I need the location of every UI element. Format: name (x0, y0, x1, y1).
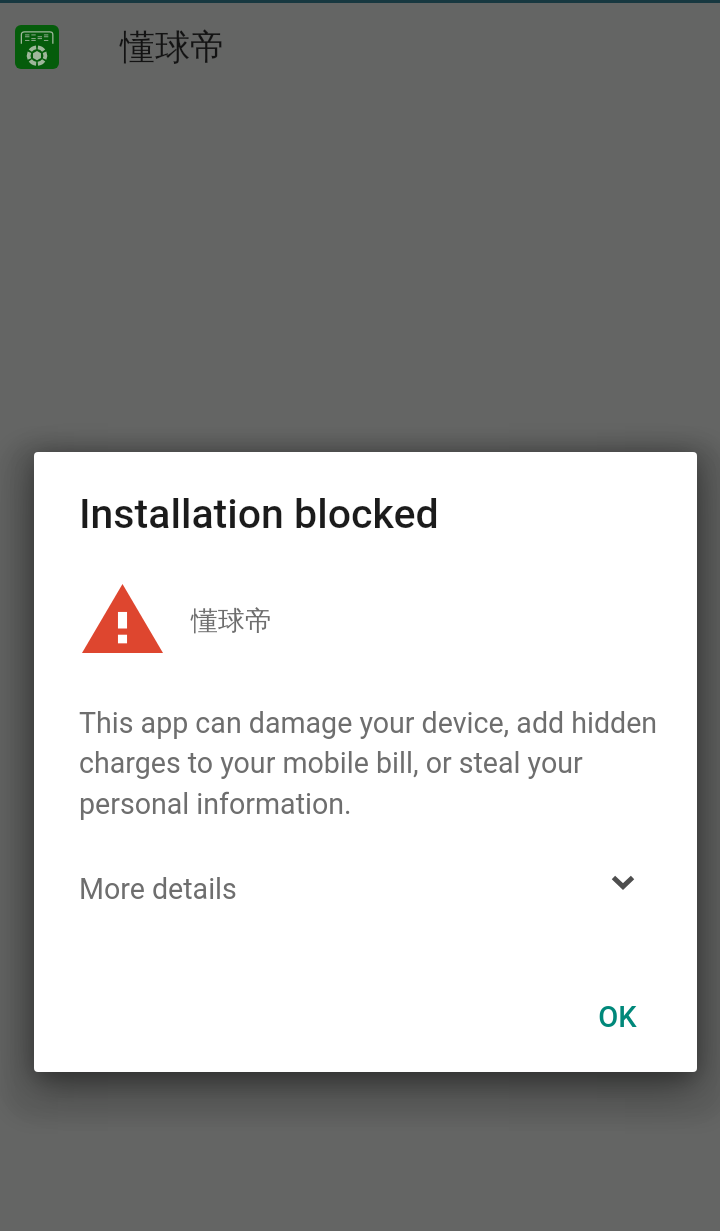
button[interactable]: App icon (15, 25, 59, 69)
staticText: More details (79, 872, 237, 906)
staticText: 懂球帝 (120, 25, 225, 69)
button[interactable]: More details (34, 866, 697, 930)
staticText: 懂球帝 (191, 604, 272, 638)
button[interactable]: OK (579, 980, 674, 1056)
other: Show more details (611, 875, 635, 889)
staticText: This app can damage your device, add hid… (79, 706, 664, 823)
staticText: OK (598, 1000, 637, 1034)
staticText: Installation blocked (79, 490, 439, 538)
